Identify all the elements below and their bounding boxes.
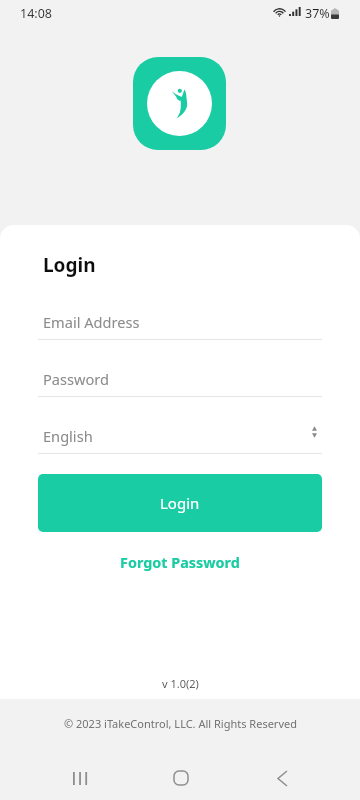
staticText: English (43, 426, 93, 446)
staticText: Forgot Password (120, 553, 240, 573)
staticText: © 2023 iTakeControl, LLC. All Rights Res… (64, 716, 297, 731)
button[interactable]: Forgot Password (0, 545, 360, 581)
staticText: Email Address (43, 312, 140, 332)
staticText: Password (43, 369, 110, 389)
button[interactable]: Recent apps (56, 760, 104, 796)
staticText: Login (160, 493, 200, 513)
button[interactable]: Login (38, 474, 322, 532)
staticText: 37% (305, 5, 330, 22)
button[interactable]: Home (157, 760, 205, 796)
staticText: v 1.0(2) (162, 676, 199, 691)
button[interactable]: Back (258, 760, 306, 796)
staticText: Login (43, 252, 96, 278)
staticText: 14:08 (20, 5, 52, 22)
